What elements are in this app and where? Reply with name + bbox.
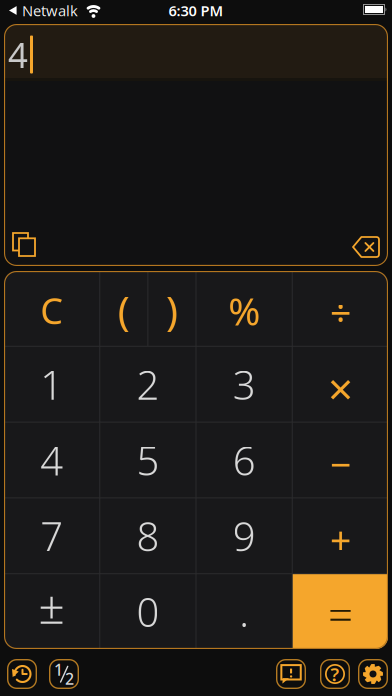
staticText: 8 [136, 509, 159, 562]
staticText: 6:30 PM [168, 1, 223, 20]
staticText: 6 [233, 433, 256, 486]
staticText: + [330, 515, 351, 565]
staticText: × [328, 359, 353, 417]
button[interactable]: + [293, 498, 388, 573]
button[interactable]: One half [49, 659, 79, 689]
staticText: ÷ [330, 288, 351, 337]
staticText: C [40, 286, 63, 334]
staticText: 1 [54, 659, 63, 680]
button[interactable]: 6 [196, 423, 292, 497]
button[interactable]: Backspace [344, 225, 388, 263]
button[interactable]: 2 [100, 347, 195, 422]
button[interactable]: 3 [196, 347, 292, 422]
button[interactable]: ÷ [293, 271, 388, 346]
staticText: 0 [136, 585, 159, 638]
button[interactable]: C [4, 271, 99, 346]
staticText: 2 [136, 358, 159, 411]
staticText: 9 [233, 509, 256, 562]
button[interactable]: Copy [4, 224, 44, 265]
button[interactable]: History [7, 659, 37, 689]
staticText: ) [166, 284, 178, 337]
staticText: ? [330, 662, 339, 686]
staticText: ± [38, 575, 65, 637]
button[interactable]: Feedback [276, 659, 306, 689]
staticText: 7 [40, 509, 63, 562]
staticText: 4 [40, 433, 63, 486]
button[interactable]: 1 [4, 347, 99, 422]
staticText: 3 [233, 358, 256, 411]
staticText: 4 [8, 31, 28, 77]
button[interactable]: ( [100, 271, 147, 346]
button[interactable]: 9 [196, 498, 292, 573]
staticText: % [228, 285, 260, 336]
button[interactable]: − [293, 423, 388, 497]
staticText: . [239, 585, 249, 638]
button[interactable]: 4 [4, 423, 99, 497]
button[interactable]: Settings [358, 659, 388, 689]
button[interactable]: × [293, 347, 388, 422]
button[interactable]: . [196, 574, 292, 649]
staticText: Netwalk [22, 1, 78, 20]
button[interactable]: = [293, 574, 388, 649]
staticText: 1 [40, 358, 63, 411]
button[interactable]: Help [320, 659, 350, 689]
button[interactable]: 8 [100, 498, 195, 573]
button[interactable]: 5 [100, 423, 195, 497]
button[interactable]: ± [4, 574, 99, 649]
staticText: ( [118, 284, 130, 337]
staticText: 5 [136, 433, 159, 486]
button[interactable]: ) [148, 271, 195, 346]
staticText: − [330, 439, 351, 489]
button[interactable]: % [196, 271, 292, 346]
staticText: = [328, 584, 353, 643]
button[interactable]: 0 [100, 574, 195, 649]
staticText: 2 [65, 668, 74, 689]
button[interactable]: 7 [4, 498, 99, 573]
